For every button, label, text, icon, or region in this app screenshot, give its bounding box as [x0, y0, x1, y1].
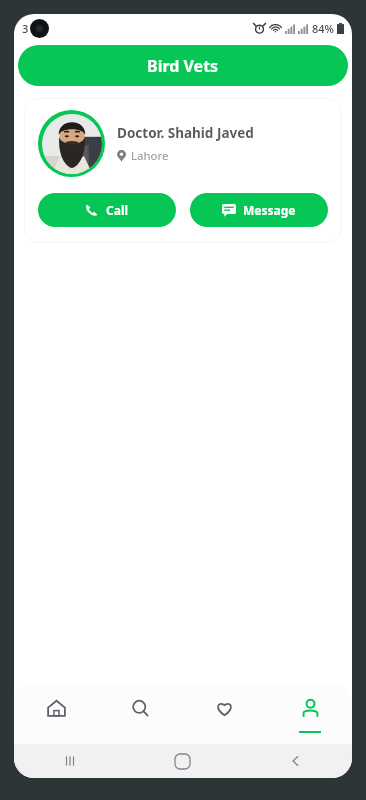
- button[interactable]: Message: [190, 193, 328, 227]
- button[interactable]: Search: [98, 686, 182, 744]
- staticText: Bird Vets: [147, 55, 219, 77]
- button[interactable]: Profile: [267, 686, 352, 744]
- button[interactable]: Bird Vets: [18, 45, 348, 86]
- staticText: Call: [106, 202, 129, 218]
- staticText: 84%: [312, 21, 334, 36]
- button[interactable]: Home: [126, 744, 239, 778]
- staticText: Message: [243, 202, 296, 218]
- staticText: 3: [22, 21, 29, 36]
- button[interactable]: Doctor. Shahid Javed: [24, 98, 342, 243]
- button[interactable]: Recents: [14, 744, 126, 778]
- staticText: Doctor. Shahid Javed: [117, 124, 254, 142]
- button[interactable]: Call: [38, 193, 176, 227]
- button[interactable]: Back: [239, 744, 352, 778]
- staticText: Lahore: [131, 148, 169, 164]
- button[interactable]: Home: [14, 686, 98, 744]
- button[interactable]: Favorites: [182, 686, 267, 744]
